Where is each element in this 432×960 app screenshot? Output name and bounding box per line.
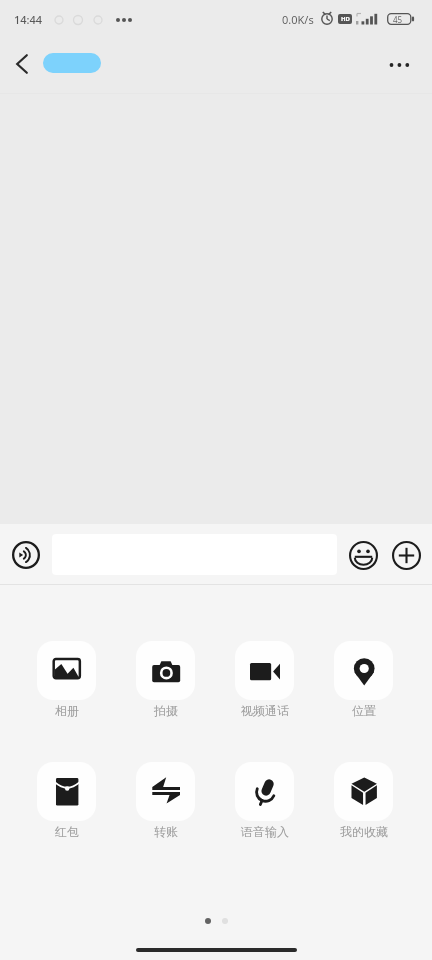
staticText: 14:44 — [14, 12, 43, 27]
button[interactable]: 拍摄 — [116, 641, 215, 718]
button[interactable]: 相册 — [17, 641, 116, 718]
staticText: 我的收藏 — [340, 824, 388, 839]
button[interactable]: Back — [4, 42, 40, 86]
button[interactable]: 红包 — [17, 762, 116, 839]
button[interactable]: 位置 — [314, 641, 413, 718]
button[interactable]: 视频通话 — [215, 641, 314, 718]
staticText: 位置 — [352, 703, 376, 718]
button[interactable]: 我的收藏 — [314, 762, 413, 839]
button[interactable]: Voice input — [9, 538, 43, 572]
staticText: 语音输入 — [241, 824, 289, 839]
button[interactable]: 转账 — [116, 762, 215, 839]
staticText: 转账 — [154, 824, 178, 839]
staticText: 拍摄 — [154, 703, 178, 718]
staticText: 0.0K/s — [282, 12, 314, 27]
staticText: 45 — [393, 14, 403, 25]
button[interactable]: More — [389, 538, 423, 572]
button[interactable]: Emoji — [346, 538, 380, 572]
staticText: 相册 — [55, 703, 79, 718]
staticText: 视频通话 — [241, 703, 289, 718]
button[interactable]: More options — [379, 43, 423, 87]
staticText: 红包 — [55, 824, 79, 839]
staticText: HD — [341, 15, 350, 23]
button[interactable]: 语音输入 — [215, 762, 314, 839]
